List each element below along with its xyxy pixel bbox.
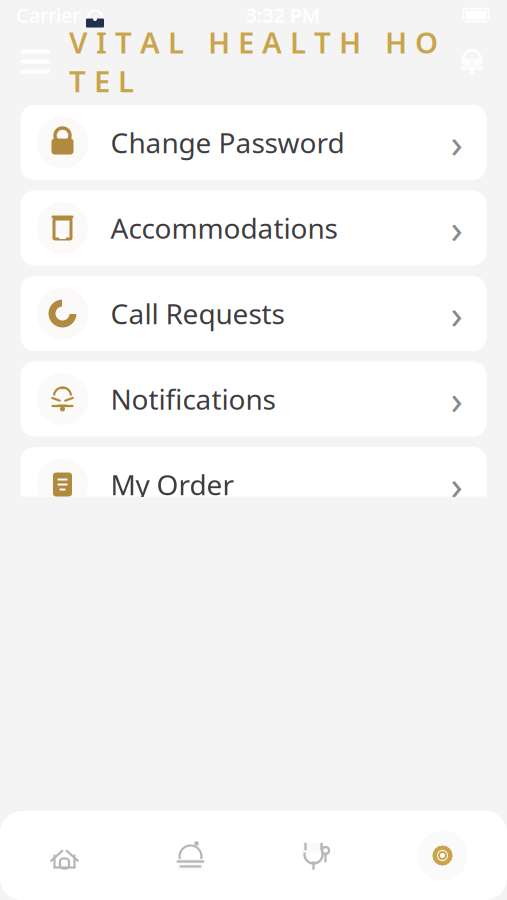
button[interactable]: Home xyxy=(1,811,127,900)
staticText: Carrier xyxy=(16,2,80,28)
staticText: Change Password xyxy=(110,124,344,161)
staticText: › xyxy=(450,201,462,254)
staticText: 3:32 PM xyxy=(245,2,320,28)
staticText: Accommodations xyxy=(110,209,337,247)
button[interactable]: Services xyxy=(127,811,253,900)
button[interactable]: Settings xyxy=(379,811,505,900)
button[interactable]: Call Requests xyxy=(20,276,486,351)
button[interactable]: Accommodations xyxy=(20,190,486,265)
staticText: Privacy Policy xyxy=(110,808,285,845)
button[interactable]: Notifications xyxy=(447,36,497,86)
staticText: › xyxy=(450,116,462,169)
staticText: Call Requests xyxy=(110,295,284,332)
staticText: V I T A L H E A L T H H O T E L xyxy=(69,22,438,100)
staticText: › xyxy=(450,287,462,340)
button[interactable]: Change Password xyxy=(20,105,486,180)
button[interactable]: Privacy Policy xyxy=(20,789,486,864)
button[interactable]: My Order xyxy=(20,447,486,522)
staticText: My Order xyxy=(110,466,234,503)
staticText: › xyxy=(450,800,462,853)
button[interactable]: Notifications xyxy=(20,361,486,436)
button[interactable]: Menu xyxy=(10,36,60,86)
staticText: › xyxy=(450,372,462,425)
button[interactable]: Appointments xyxy=(253,811,379,900)
staticText: Notifications xyxy=(110,380,275,418)
staticText: › xyxy=(450,458,462,511)
